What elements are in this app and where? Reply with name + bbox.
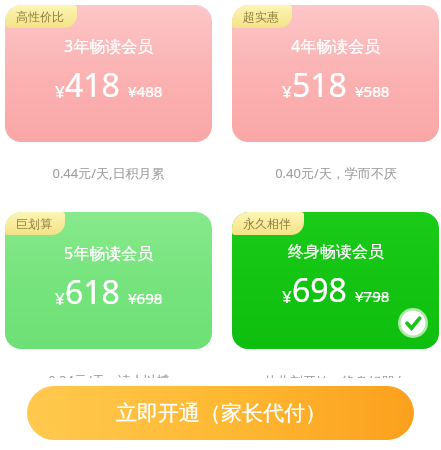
- staticText: ¥: [282, 285, 292, 308]
- staticText: 巨划算: [16, 216, 52, 231]
- other: Selected plan: [398, 308, 428, 338]
- staticText: 3年畅读会员: [64, 35, 154, 57]
- staticText: ¥798: [355, 286, 390, 306]
- staticText: ¥488: [128, 81, 163, 101]
- staticText: 0.34元/天，读人以博: [48, 371, 170, 389]
- staticText: 从此刻开始，终身好朋友: [264, 373, 407, 389]
- staticText: 超实惠: [243, 9, 279, 24]
- staticText: 终身畅读会员: [288, 242, 384, 262]
- button[interactable]: 0.40元/天，学而不厌: [232, 5, 439, 195]
- staticText: 0.40元/天，学而不厌: [275, 164, 397, 182]
- staticText: 4年畅读会员: [291, 35, 381, 57]
- button[interactable]: 0.44元/天,日积月累: [5, 5, 212, 195]
- staticText: 418: [65, 63, 120, 107]
- staticText: ¥: [55, 80, 65, 103]
- staticText: 618: [65, 270, 120, 314]
- staticText: 698: [292, 268, 347, 312]
- staticText: 5年畅读会员: [64, 242, 154, 264]
- button[interactable]: 从此刻开始，终身好朋友: [232, 212, 439, 402]
- staticText: 0.44元/天,日积月累: [52, 164, 165, 182]
- staticText: 立即开通（家长代付）: [116, 400, 326, 426]
- staticText: 高性价比: [16, 9, 64, 24]
- staticText: ¥: [55, 287, 65, 310]
- staticText: ¥698: [128, 288, 163, 308]
- button[interactable]: 0.34元/天，读人以博: [5, 212, 212, 402]
- staticText: 永久相伴: [243, 216, 291, 231]
- staticText: 518: [292, 63, 347, 107]
- staticText: ¥: [282, 80, 292, 103]
- staticText: ¥588: [355, 81, 390, 101]
- button[interactable]: 立即开通（家长代付）: [27, 386, 414, 440]
